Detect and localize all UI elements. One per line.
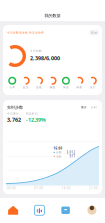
button[interactable]: Profile: [79, 198, 105, 223]
staticText: 14:00: [62, 186, 71, 190]
button[interactable]: Plan: [52, 198, 79, 223]
button[interactable]: 体温: [59, 77, 73, 89]
button[interactable]: 压力: [86, 77, 99, 89]
staticText: 3,762: [7, 116, 21, 123]
staticText: 压力: [90, 86, 96, 89]
staticText: ·今日步数未达标,快去运动吧: [6, 31, 44, 34]
staticText: 送TA: [91, 31, 97, 34]
staticText: -12.39%: [26, 116, 46, 123]
button[interactable]: 分时: [89, 106, 99, 109]
button[interactable]: 睡眠: [46, 77, 59, 89]
staticText: 21:00: [89, 186, 98, 190]
staticText: 07:00: [34, 186, 43, 190]
staticText: 16:00: [53, 147, 62, 150]
staticText: 血氧: [36, 86, 42, 89]
staticText: 今日步数: [30, 49, 42, 53]
button[interactable]: 累计: [79, 106, 89, 109]
staticText: 2,398/6,000: [30, 55, 60, 62]
staticText: 睡眠: [49, 86, 55, 89]
button[interactable]: 心率: [5, 77, 19, 89]
staticText: 血压: [23, 86, 29, 89]
staticText: 心率: [9, 86, 15, 89]
staticText: 体重: [76, 86, 82, 89]
staticText: 分时: [91, 106, 97, 109]
staticText: 消耗: [56, 155, 62, 158]
button[interactable]: Home: [0, 198, 26, 223]
button[interactable]: 血压: [19, 77, 32, 89]
staticText: 我的数据: [44, 13, 60, 18]
staticText: 实时步数: [7, 105, 23, 110]
staticText: 体温: [63, 86, 69, 89]
staticText: 00:00: [7, 186, 16, 190]
button[interactable]: Data: [26, 198, 52, 223]
button[interactable]: 体重: [73, 77, 86, 89]
staticText: 977: [69, 155, 75, 158]
staticText: 今日累计: [7, 112, 19, 115]
staticText: 3,012: [66, 151, 75, 154]
button[interactable]: 送TA: [89, 30, 99, 35]
staticText: 累计: [81, 106, 87, 109]
staticText: 步数: [56, 151, 62, 154]
button[interactable]: 血氧: [32, 77, 46, 89]
staticText: 同比昨日: [26, 112, 38, 115]
